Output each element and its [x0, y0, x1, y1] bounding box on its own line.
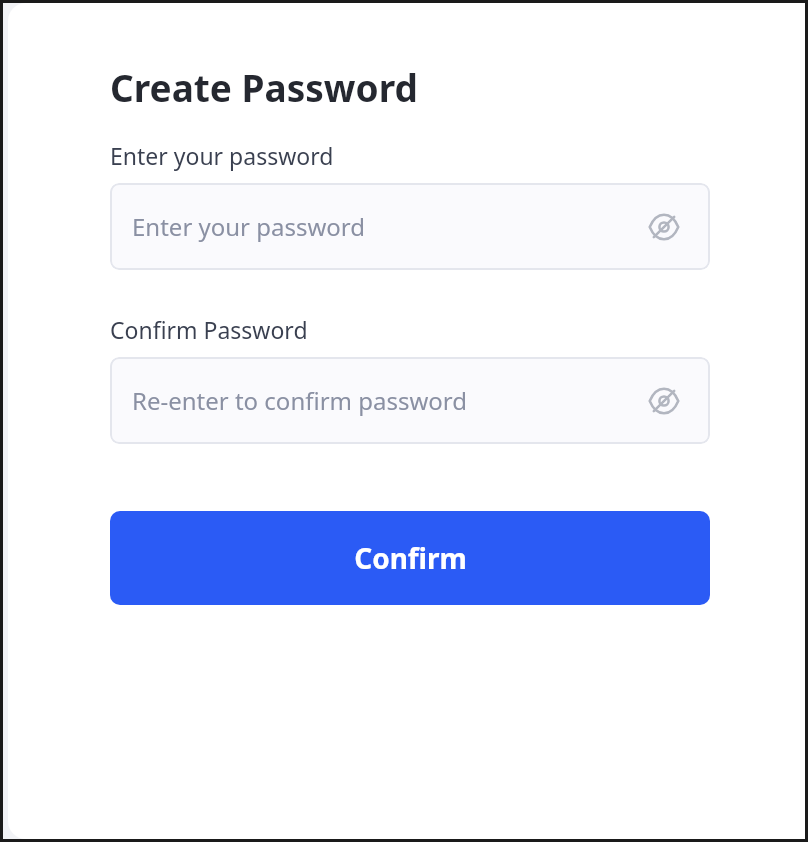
button[interactable]: Confirm: [110, 511, 710, 605]
staticText: Re-enter to confirm password: [132, 384, 468, 417]
button[interactable]: Show confirm password: [644, 381, 684, 421]
staticText: Create Password: [110, 62, 418, 112]
staticText: Confirm Password: [110, 314, 308, 345]
button[interactable]: Enter your password: [110, 183, 710, 270]
staticText: Enter your password: [110, 140, 334, 171]
staticText: Enter your password: [132, 210, 366, 243]
button[interactable]: Show password: [644, 207, 684, 247]
staticText: Confirm: [354, 539, 467, 577]
button[interactable]: Re-enter to confirm password: [110, 357, 710, 444]
